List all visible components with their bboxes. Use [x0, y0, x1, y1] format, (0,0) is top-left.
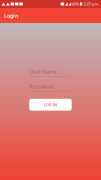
staticText: Password — [29, 83, 53, 90]
staticText: Login — [4, 12, 18, 19]
button[interactable]: User Name — [29, 67, 72, 77]
staticText: 60% — [72, 1, 79, 7]
button[interactable]: LOG IN — [29, 99, 72, 111]
staticText: LOG IN — [44, 102, 57, 107]
staticText: User Name — [29, 68, 57, 75]
button[interactable]: Password — [29, 82, 72, 92]
staticText: 3:27 a.m. — [83, 1, 99, 7]
